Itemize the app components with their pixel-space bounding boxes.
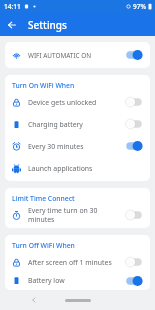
other: Wifi <box>12 51 21 60</box>
button[interactable]: Back <box>3 16 21 34</box>
button[interactable]: Toggle <box>125 49 143 61</box>
other: Battery <box>12 276 21 285</box>
staticText: Charging battery <box>28 120 125 129</box>
button[interactable]: Alarm <box>5 135 150 157</box>
staticText: Turn On WiFi When <box>12 81 75 90</box>
other: Lock <box>12 98 21 107</box>
button[interactable]: Toggle <box>125 275 143 287</box>
button[interactable]: Wifi <box>5 44 150 66</box>
staticText: After screen off 1 minutes <box>28 258 125 267</box>
button[interactable]: Battery <box>5 273 150 288</box>
other: Timer <box>12 211 21 220</box>
button[interactable]: Lock <box>5 251 150 273</box>
button[interactable]: Toggle <box>125 96 143 108</box>
button[interactable]: Home <box>65 299 91 302</box>
staticText: WIFI AUTOMATIC ON <box>28 51 125 60</box>
button[interactable]: Timer <box>5 204 150 226</box>
other: Battery <box>12 120 21 129</box>
button[interactable]: Toggle <box>125 256 143 268</box>
button[interactable]: Toggle <box>125 140 143 152</box>
button[interactable]: Battery <box>5 113 150 135</box>
button[interactable]: Apps <box>5 157 150 179</box>
button[interactable]: Toggle <box>125 118 143 130</box>
staticText: Turn Off WiFi When <box>12 241 75 250</box>
other: Lock <box>12 258 21 267</box>
staticText: 97% <box>133 2 146 11</box>
staticText: Every 30 minutes <box>28 142 125 151</box>
button[interactable]: Lock <box>5 91 150 113</box>
staticText: Settings <box>28 18 67 32</box>
button[interactable]: Back <box>28 294 40 306</box>
button[interactable]: Toggle <box>125 209 143 221</box>
staticText: Every time turn on 30 minutes <box>28 206 125 224</box>
staticText: Battery low <box>28 276 125 285</box>
other: Alarm <box>12 142 21 151</box>
staticText: Limit Time Connect <box>12 194 75 203</box>
staticText: 14:11 <box>4 2 21 11</box>
other: Apps <box>12 164 21 173</box>
staticText: Launch applications <box>28 164 143 173</box>
staticText: Device gets unlocked <box>28 98 125 107</box>
